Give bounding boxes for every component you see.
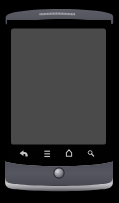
button[interactable]: Screen: [11, 29, 106, 145]
button[interactable]: Menu: [37, 146, 58, 163]
other: Android phone: [0, 0, 119, 203]
button[interactable]: Home: [59, 146, 80, 163]
button[interactable]: Search: [81, 146, 102, 163]
button[interactable]: Trackball: [52, 166, 66, 180]
button[interactable]: Back: [14, 146, 35, 163]
